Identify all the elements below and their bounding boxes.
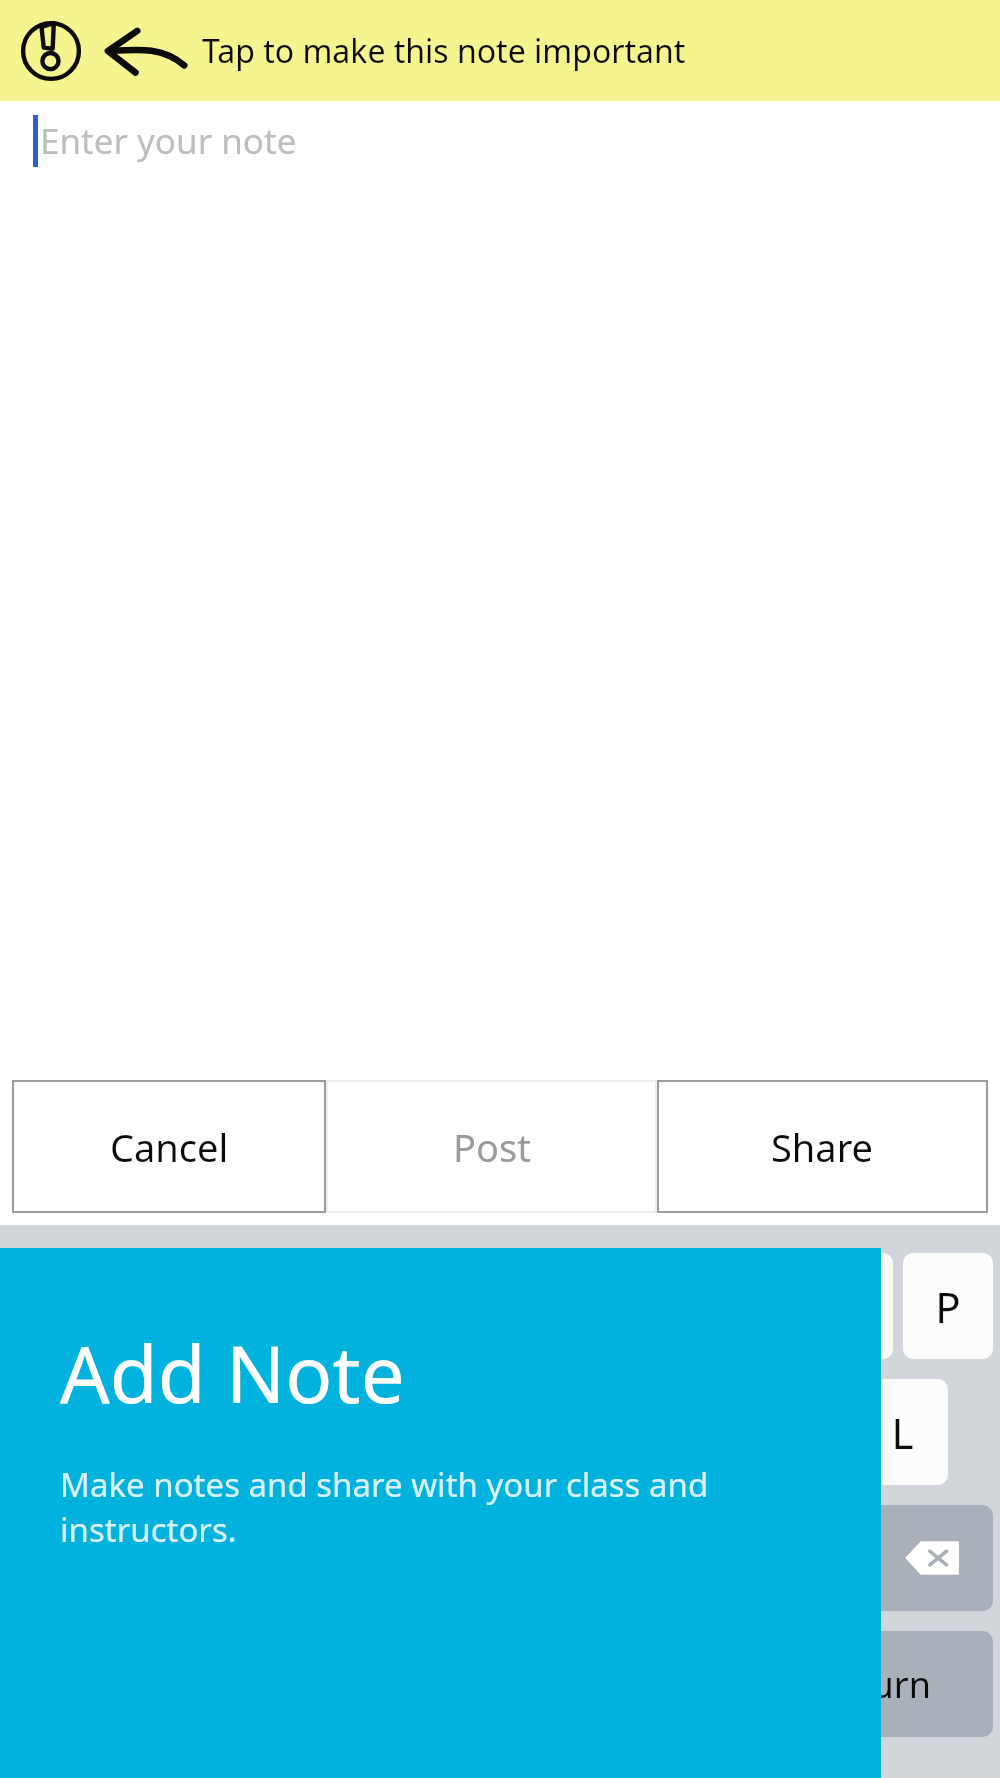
staticText: Make notes and share with your class and…	[60, 1462, 709, 1551]
other: Important	[20, 16, 82, 86]
button[interactable]: Cancel	[12, 1080, 326, 1213]
staticText: Add Note	[60, 1320, 405, 1426]
button[interactable]: Shift	[7, 1505, 131, 1611]
button[interactable]: Share	[657, 1080, 988, 1213]
button[interactable]: F	[352, 1379, 443, 1485]
button[interactable]: return	[761, 1631, 993, 1737]
button[interactable]: R	[304, 1253, 393, 1359]
button[interactable]: Enter your note	[0, 101, 1000, 181]
staticText: Tap to make this note important	[202, 29, 686, 73]
staticText: return	[824, 1660, 931, 1709]
button[interactable]: Backspace	[870, 1505, 993, 1611]
button[interactable]: Important	[0, 0, 1000, 101]
button[interactable]: L	[857, 1379, 948, 1485]
button[interactable]: Z	[141, 1505, 236, 1611]
staticText: Enter your note	[40, 117, 297, 165]
button[interactable]: J	[655, 1379, 746, 1485]
button[interactable]: Post	[326, 1080, 657, 1213]
staticText: Share	[771, 1121, 874, 1173]
button[interactable]: O	[803, 1253, 893, 1359]
button[interactable]: H	[554, 1379, 645, 1485]
staticText: Z	[176, 1530, 201, 1587]
staticText: P	[935, 1278, 961, 1335]
staticText: L	[891, 1404, 914, 1461]
button[interactable]: W	[106, 1253, 195, 1359]
button[interactable]: A	[52, 1379, 142, 1485]
button[interactable]: Q	[7, 1253, 96, 1359]
other: Arrow	[102, 27, 186, 75]
staticText: Cancel	[110, 1121, 229, 1173]
staticText: Post	[453, 1121, 531, 1173]
button[interactable]: D	[252, 1379, 342, 1485]
button[interactable]: S	[152, 1379, 242, 1485]
button[interactable]: Add Note	[0, 1248, 881, 1778]
button[interactable]: P	[903, 1253, 993, 1359]
button[interactable]: G	[453, 1379, 544, 1485]
button[interactable]: E	[205, 1253, 294, 1359]
